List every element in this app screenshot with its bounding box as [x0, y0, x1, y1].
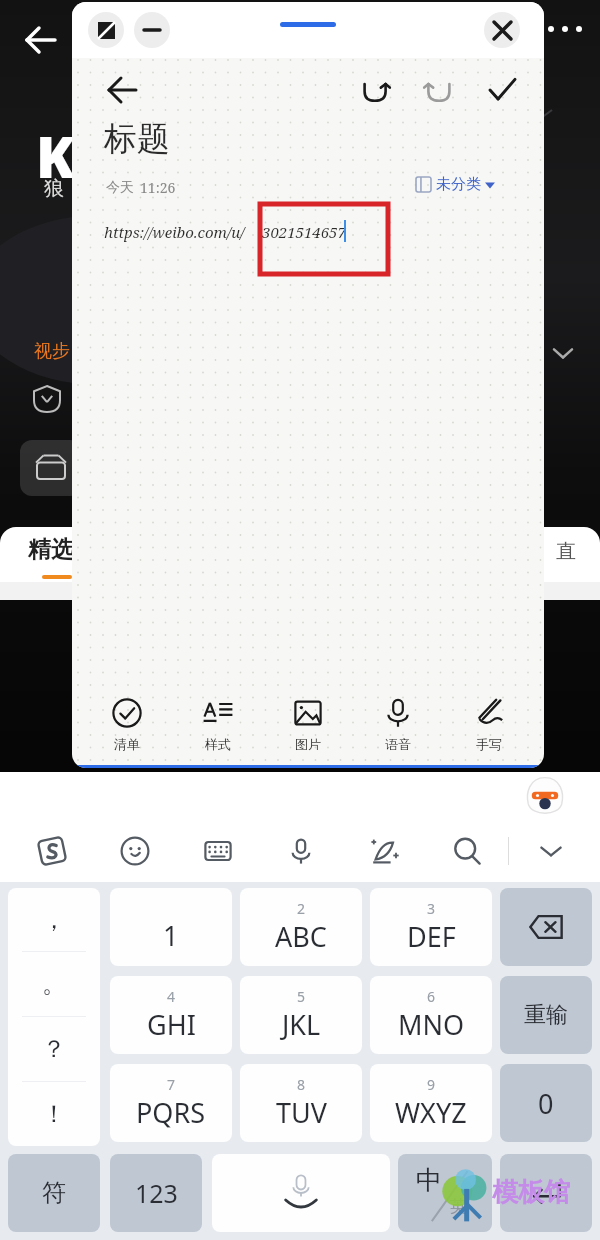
staticText: 英 — [450, 1196, 467, 1217]
button[interactable]: Space — [212, 1154, 390, 1232]
staticText: 4 — [167, 987, 176, 1006]
button[interactable]: Back — [14, 14, 66, 66]
button[interactable]: Backspace — [500, 888, 592, 966]
button[interactable]: 图片 — [265, 690, 351, 760]
staticText: 样式 — [205, 736, 231, 752]
staticText: TUV — [276, 1094, 327, 1131]
staticText: 中 — [416, 1164, 442, 1197]
staticText: 1 — [163, 917, 179, 954]
staticText: 9 — [427, 1075, 436, 1094]
staticText: ？ — [42, 1034, 66, 1064]
button[interactable]: More options — [544, 26, 586, 32]
button[interactable]: Sogou — [10, 820, 93, 882]
button[interactable]: 4 — [110, 976, 232, 1054]
staticText: 重输 — [524, 1001, 568, 1029]
button[interactable]: Keyboard layout — [176, 820, 259, 882]
button[interactable]: 0 — [500, 1064, 592, 1142]
button[interactable]: Search — [425, 820, 508, 882]
button[interactable]: Store — [20, 440, 82, 496]
staticText: 3021514657 — [262, 222, 346, 242]
button[interactable]: Close — [484, 12, 520, 48]
button[interactable]: Expand — [548, 338, 578, 368]
staticText: 图片 — [295, 736, 321, 752]
button[interactable]: Resize window — [88, 12, 124, 48]
button[interactable]: 语音 — [355, 690, 441, 760]
button[interactable]: Voice input — [259, 820, 342, 882]
button[interactable]: 清单 — [84, 690, 170, 760]
staticText: 清单 — [114, 736, 140, 752]
button[interactable]: Done — [476, 64, 528, 116]
staticText: 3 — [427, 899, 436, 918]
staticText: 精选 — [28, 535, 74, 564]
staticText: ， — [42, 905, 66, 935]
button[interactable]: Enter — [500, 1154, 592, 1232]
button[interactable]: Drag handle — [280, 22, 336, 27]
button[interactable]: Emoji — [93, 820, 176, 882]
staticText: JKL — [282, 1006, 321, 1043]
button[interactable]: 直 — [556, 539, 576, 564]
staticText: 直 — [556, 539, 576, 564]
staticText: 模板馆 — [492, 1176, 570, 1209]
button[interactable]: Redo — [412, 64, 464, 116]
staticText: 未分类 — [436, 175, 481, 194]
button[interactable]: Minimize — [134, 12, 170, 48]
button[interactable]: Undo — [350, 64, 402, 116]
button[interactable]: 8 — [240, 1064, 362, 1142]
button[interactable]: 符 — [8, 1154, 100, 1232]
staticText: 。 — [42, 969, 66, 999]
button[interactable]: 1 — [110, 888, 232, 966]
button[interactable]: 未分类 — [416, 175, 495, 194]
button[interactable]: 9 — [370, 1064, 492, 1142]
staticText: 手写 — [476, 736, 502, 752]
staticText: 7 — [167, 1075, 176, 1094]
button[interactable]: Assistant — [522, 774, 568, 820]
staticText: ！ — [42, 1099, 66, 1129]
button[interactable]: 123 — [110, 1154, 202, 1232]
staticText: 2 — [297, 899, 306, 918]
button[interactable]: Switch Chinese English — [398, 1154, 492, 1232]
staticText: 123 — [135, 1176, 178, 1210]
staticText: GHI — [147, 1006, 196, 1043]
staticText: https://weibo.com/u/ — [104, 222, 245, 242]
staticText: 8 — [297, 1075, 306, 1094]
button[interactable]: 7 — [110, 1064, 232, 1142]
button[interactable]: 2 — [240, 888, 362, 966]
button[interactable]: 精选 — [28, 535, 74, 564]
staticText: PQRS — [136, 1094, 206, 1131]
staticText: DEF — [407, 918, 456, 955]
staticText: 今天 — [106, 179, 134, 197]
staticText: K — [36, 118, 75, 194]
staticText: 0 — [538, 1085, 554, 1122]
staticText: MNO — [398, 1006, 465, 1043]
button[interactable]: Verified — [30, 382, 64, 416]
button[interactable]: 6 — [370, 976, 492, 1054]
staticText: WXYZ — [395, 1094, 467, 1131]
button[interactable]: 样式 — [175, 690, 261, 760]
staticText: 狼 — [44, 176, 64, 201]
staticText: ABC — [275, 918, 327, 955]
staticText: 语音 — [385, 736, 411, 752]
staticText: 5 — [297, 987, 306, 1006]
button[interactable]: 3 — [370, 888, 492, 966]
staticText: 视步 — [34, 340, 70, 363]
button[interactable]: Hide keyboard — [509, 820, 592, 882]
button[interactable]: ， — [8, 888, 100, 1146]
staticText: 11:26 — [140, 178, 176, 197]
staticText: 6 — [427, 987, 436, 1006]
button[interactable]: 重输 — [500, 976, 592, 1054]
button[interactable]: Handwriting — [342, 820, 425, 882]
button[interactable]: Back — [96, 64, 148, 116]
button[interactable]: 手写 — [446, 690, 532, 760]
staticText: 符 — [42, 1178, 66, 1208]
button[interactable]: 5 — [240, 976, 362, 1054]
staticText: 标题 — [104, 118, 170, 160]
